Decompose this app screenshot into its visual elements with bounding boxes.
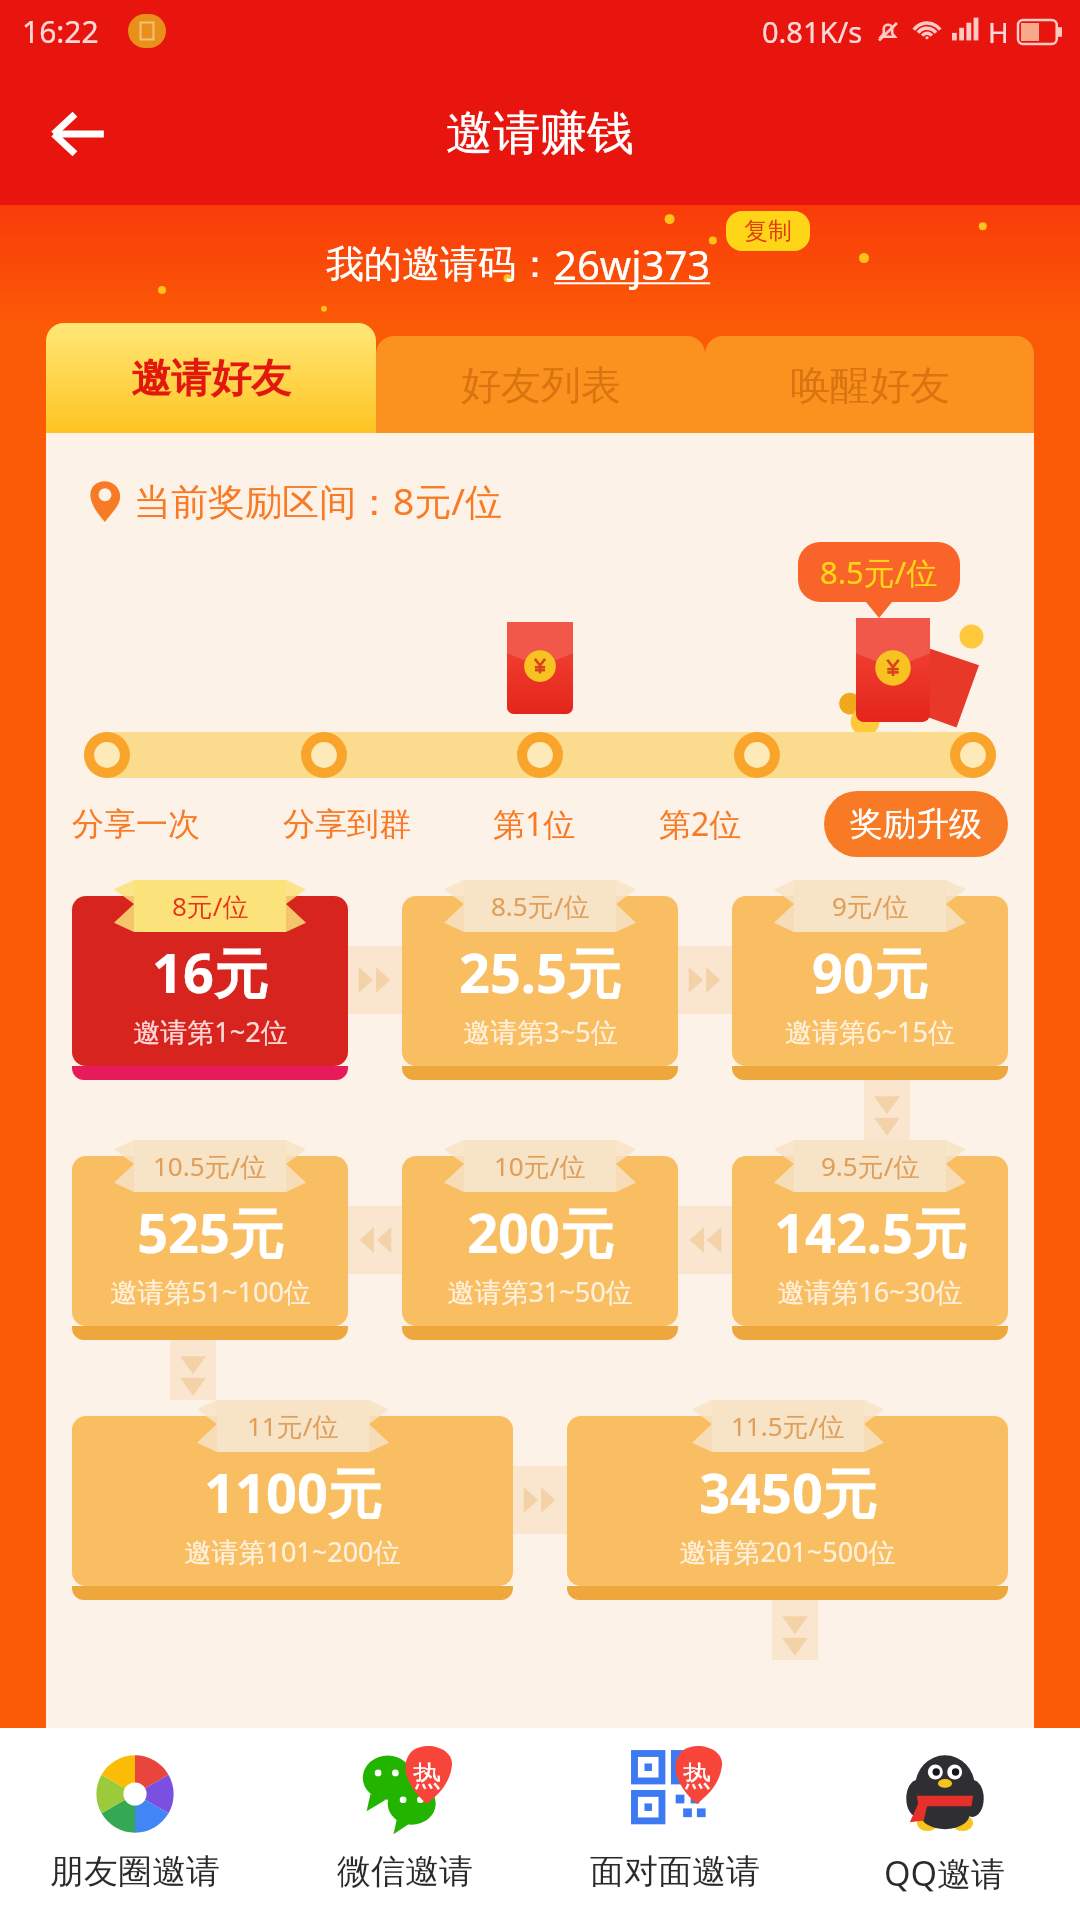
button[interactable]: Back xyxy=(40,96,116,172)
staticText: 9.5元/位 xyxy=(821,1148,920,1184)
staticText: 8元/位 xyxy=(172,888,249,924)
staticText: 第2位 xyxy=(659,802,742,846)
staticText: 邀请第31~50位 xyxy=(447,1273,633,1310)
staticText: 复制 xyxy=(744,216,792,246)
staticText: 8.5元/位 xyxy=(491,888,590,924)
staticText: 邀请第6~15位 xyxy=(785,1013,955,1050)
button[interactable]: 200元 xyxy=(402,1156,678,1326)
staticText: 90元 xyxy=(812,935,928,1009)
staticText: 好友列表 xyxy=(461,360,621,410)
staticText: 第1位 xyxy=(493,802,576,846)
button[interactable]: 90元 xyxy=(732,896,1008,1066)
staticText: 微信邀请 xyxy=(337,1850,473,1893)
staticText: 8.5元/位 xyxy=(820,551,938,593)
button[interactable]: 16元 xyxy=(72,896,348,1066)
staticText: 唤醒好友 xyxy=(790,360,950,410)
button[interactable]: 唤醒好友 xyxy=(705,336,1034,433)
staticText: 分享到群 xyxy=(283,804,411,844)
staticText: 邀请第51~100位 xyxy=(110,1273,311,1310)
staticText: 11元/位 xyxy=(247,1408,339,1444)
button[interactable]: 142.5元 xyxy=(732,1156,1008,1326)
staticText: 奖励升级 xyxy=(850,803,982,845)
staticText: 10.5元/位 xyxy=(153,1148,267,1184)
staticText: 11.5元/位 xyxy=(731,1408,845,1444)
staticText: 邀请第1~2位 xyxy=(133,1013,288,1050)
button[interactable]: 奖励升级 xyxy=(824,791,1008,857)
button[interactable]: 朋友圈邀请 xyxy=(0,1728,270,1920)
staticText: 142.5元 xyxy=(774,1195,967,1269)
button[interactable]: 3450元 xyxy=(567,1416,1008,1586)
staticText: 邀请第16~30位 xyxy=(777,1273,963,1310)
staticText: 当前奖励区间：8元/位 xyxy=(134,475,502,526)
button[interactable]: 邀请好友 xyxy=(46,323,376,433)
staticText: 邀请第101~200位 xyxy=(184,1533,401,1570)
staticText: QQ邀请 xyxy=(884,1850,1006,1896)
staticText: 16:22 xyxy=(22,11,99,52)
staticText: 1100元 xyxy=(204,1455,382,1529)
button[interactable]: 热 xyxy=(270,1728,540,1920)
staticText: 邀请第201~500位 xyxy=(679,1533,896,1570)
button[interactable]: 525元 xyxy=(72,1156,348,1326)
button[interactable]: 1100元 xyxy=(72,1416,513,1586)
staticText: 面对面邀请 xyxy=(590,1850,760,1893)
button[interactable]: QQ邀请 xyxy=(810,1728,1080,1920)
staticText: 邀请第3~5位 xyxy=(463,1013,618,1050)
staticText: 200元 xyxy=(467,1195,614,1269)
staticText: 热 xyxy=(413,1758,441,1793)
button[interactable]: 复制 xyxy=(726,211,810,251)
staticText: 16元 xyxy=(152,935,268,1009)
button[interactable]: 好友列表 xyxy=(376,336,705,433)
staticText: 0.81K/s xyxy=(762,12,863,51)
button[interactable]: 热 xyxy=(540,1728,810,1920)
staticText: 9元/位 xyxy=(832,888,909,924)
staticText: 朋友圈邀请 xyxy=(50,1850,220,1893)
staticText: 我的邀请码： xyxy=(326,240,554,288)
staticText: 25.5元 xyxy=(459,935,621,1009)
staticText: 10元/位 xyxy=(494,1148,586,1184)
staticText: H xyxy=(988,13,1009,51)
staticText: 热 xyxy=(683,1758,711,1793)
staticText: 邀请赚钱 xyxy=(446,104,634,163)
staticText: 邀请好友 xyxy=(131,353,291,403)
staticText: 26wj373 xyxy=(554,237,711,291)
staticText: 525元 xyxy=(137,1195,284,1269)
staticText: 3450元 xyxy=(699,1455,877,1529)
button[interactable]: 25.5元 xyxy=(402,896,678,1066)
staticText: 分享一次 xyxy=(72,804,200,844)
